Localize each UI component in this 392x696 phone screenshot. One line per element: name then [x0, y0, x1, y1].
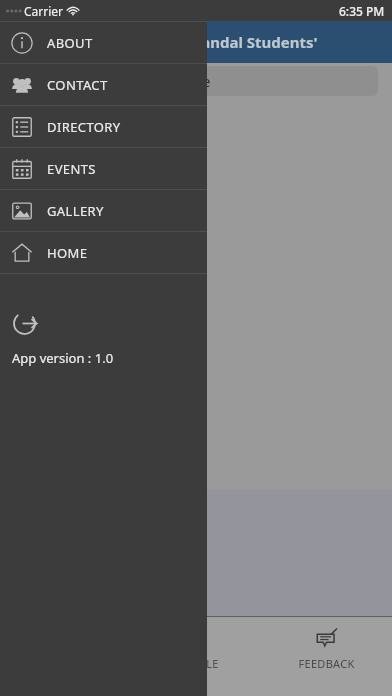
staticText: Shri Vile Parle Kelavani Mandal Students… [12, 32, 392, 52]
button[interactable]: HOME [0, 232, 207, 273]
staticText: HOME [47, 244, 88, 262]
staticText: DIRECTORY [47, 118, 121, 136]
button[interactable]: FEEDBACK [261, 617, 392, 696]
staticText: FEEDBACK [298, 656, 355, 671]
staticText: App version : 1.0 [12, 349, 114, 367]
button[interactable]: ABOUT [0, 22, 207, 63]
staticText: ABOUT [47, 34, 93, 52]
button[interactable]: GALLERY [0, 190, 207, 231]
staticText: PROFILE [173, 656, 219, 671]
button[interactable]: CONTACT [0, 64, 207, 105]
button[interactable]: PROFILE [130, 617, 261, 696]
staticText: Carrier [24, 3, 64, 19]
staticText: 6:35 PM [339, 3, 385, 19]
staticText: EVENTS [47, 160, 96, 178]
button[interactable]: EVENTS [0, 148, 207, 189]
staticText: CONTACT [47, 76, 108, 94]
button[interactable]: DIRECTORY [0, 106, 207, 147]
staticText: Notice [168, 72, 211, 91]
button[interactable]: Logout [12, 311, 37, 336]
button[interactable]: Notice [0, 66, 378, 96]
staticText: GALLERY [47, 202, 104, 220]
